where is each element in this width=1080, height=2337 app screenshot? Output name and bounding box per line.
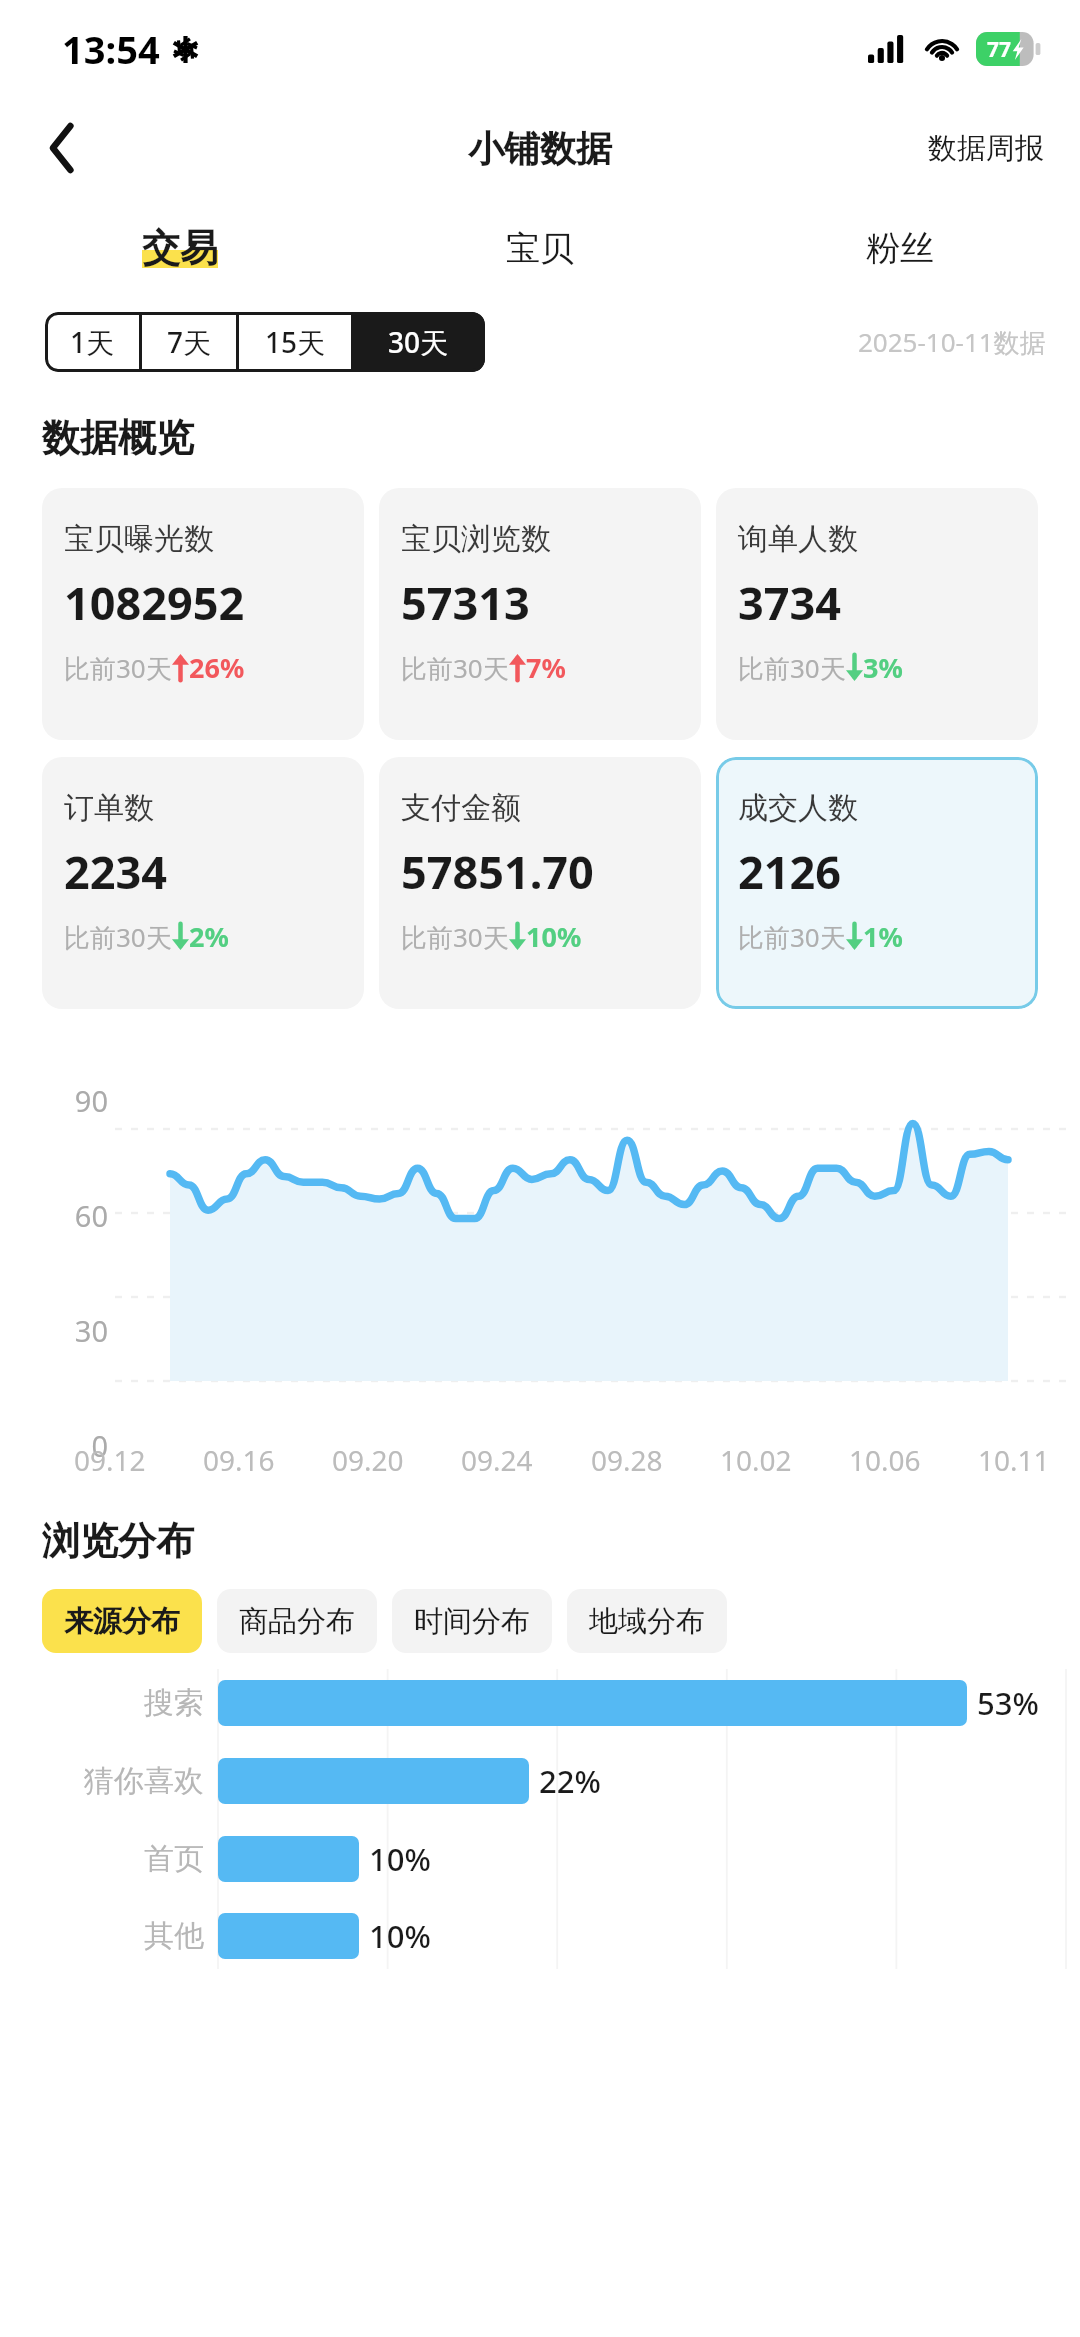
button[interactable]: 交易 xyxy=(0,198,360,298)
staticText: 09.16 xyxy=(203,1441,275,1479)
staticText: 3% xyxy=(863,649,903,686)
staticText: 10% xyxy=(526,918,582,955)
staticText: 13:54 xyxy=(62,23,160,75)
staticText: 3734 xyxy=(738,572,841,633)
staticText: 比前30天 xyxy=(738,919,846,955)
button[interactable]: 商品分布 xyxy=(217,1589,377,1653)
button[interactable]: 宝贝 xyxy=(360,198,720,298)
staticText: 53% xyxy=(977,1682,1039,1724)
staticText: 来源分布 xyxy=(64,1603,180,1640)
staticText: 10.02 xyxy=(720,1441,792,1479)
button[interactable]: 支付金额 xyxy=(379,757,701,1009)
staticText: 宝贝 xyxy=(506,227,574,270)
button[interactable]: 15天 xyxy=(239,312,351,372)
staticText: 15天 xyxy=(265,323,326,361)
button[interactable]: 成交人数 xyxy=(716,757,1038,1009)
button[interactable]: Back xyxy=(24,110,100,186)
staticText: 小铺数据 xyxy=(468,126,612,171)
button[interactable]: 粉丝 xyxy=(720,198,1080,298)
staticText: 30天 xyxy=(388,323,449,361)
button[interactable]: 宝贝曝光数 xyxy=(42,488,364,740)
staticText: 30 xyxy=(0,1311,108,1350)
staticText: 比前30天 xyxy=(64,650,172,686)
staticText: 57851.70 xyxy=(401,841,594,902)
staticText: 比前30天 xyxy=(401,919,509,955)
button[interactable]: 地域分布 xyxy=(567,1589,727,1653)
staticText: 10% xyxy=(369,1838,431,1880)
staticText: 09.20 xyxy=(332,1441,404,1479)
button[interactable]: 询单人数 xyxy=(716,488,1038,740)
staticText: 7% xyxy=(526,649,566,686)
button[interactable]: 数据周报 xyxy=(922,124,1050,173)
staticText: 比前30天 xyxy=(64,919,172,955)
button[interactable]: 30天 xyxy=(351,312,485,372)
staticText: 10.06 xyxy=(849,1441,921,1479)
button[interactable]: 宝贝浏览数 xyxy=(379,488,701,740)
staticText: 首页 xyxy=(144,1840,204,1878)
button[interactable]: 7天 xyxy=(142,312,236,372)
staticText: 7天 xyxy=(167,323,212,361)
staticText: 其他 xyxy=(144,1917,204,1955)
staticText: 1% xyxy=(863,918,903,955)
staticText: 订单数 xyxy=(64,789,154,827)
staticText: 粉丝 xyxy=(866,227,934,270)
staticText: 2025-10-11数据 xyxy=(858,324,1046,360)
button[interactable]: 时间分布 xyxy=(392,1589,552,1653)
staticText: 数据概览 xyxy=(42,414,194,462)
staticText: 搜索 xyxy=(144,1684,204,1722)
staticText: 90 xyxy=(0,1081,108,1120)
staticText: 支付金额 xyxy=(401,789,521,827)
staticText: 询单人数 xyxy=(738,520,858,558)
staticText: 成交人数 xyxy=(738,789,858,827)
button[interactable]: 1天 xyxy=(45,312,139,372)
staticText: 2% xyxy=(189,918,229,955)
staticText: 09.12 xyxy=(74,1441,146,1479)
staticText: 77 xyxy=(987,35,1012,64)
staticText: 交易 xyxy=(142,224,218,272)
button[interactable]: 订单数 xyxy=(42,757,364,1009)
staticText: 比前30天 xyxy=(401,650,509,686)
staticText: 猜你喜欢 xyxy=(84,1762,204,1800)
staticText: 1天 xyxy=(70,323,115,361)
staticText: 地域分布 xyxy=(589,1603,705,1640)
staticText: 60 xyxy=(0,1196,108,1235)
staticText: 10.11 xyxy=(978,1441,1050,1479)
staticText: 宝贝曝光数 xyxy=(64,520,214,558)
staticText: 1082952 xyxy=(64,572,245,633)
staticText: 浏览分布 xyxy=(42,1517,194,1565)
staticText: 数据周报 xyxy=(928,130,1044,167)
staticText: 09.24 xyxy=(461,1441,533,1479)
staticText: 2126 xyxy=(738,841,841,902)
staticText: 商品分布 xyxy=(239,1603,355,1640)
staticText: 09.28 xyxy=(591,1441,663,1479)
staticText: 57313 xyxy=(401,572,530,633)
staticText: 比前30天 xyxy=(738,650,846,686)
staticText: 22% xyxy=(539,1760,601,1802)
staticText: 26% xyxy=(189,649,245,686)
staticText: 2234 xyxy=(64,841,167,902)
staticText: 宝贝浏览数 xyxy=(401,520,551,558)
staticText: 0 xyxy=(0,1426,108,1465)
staticText: 10% xyxy=(369,1915,431,1957)
button[interactable]: 来源分布 xyxy=(42,1589,202,1653)
staticText: 时间分布 xyxy=(414,1603,530,1640)
